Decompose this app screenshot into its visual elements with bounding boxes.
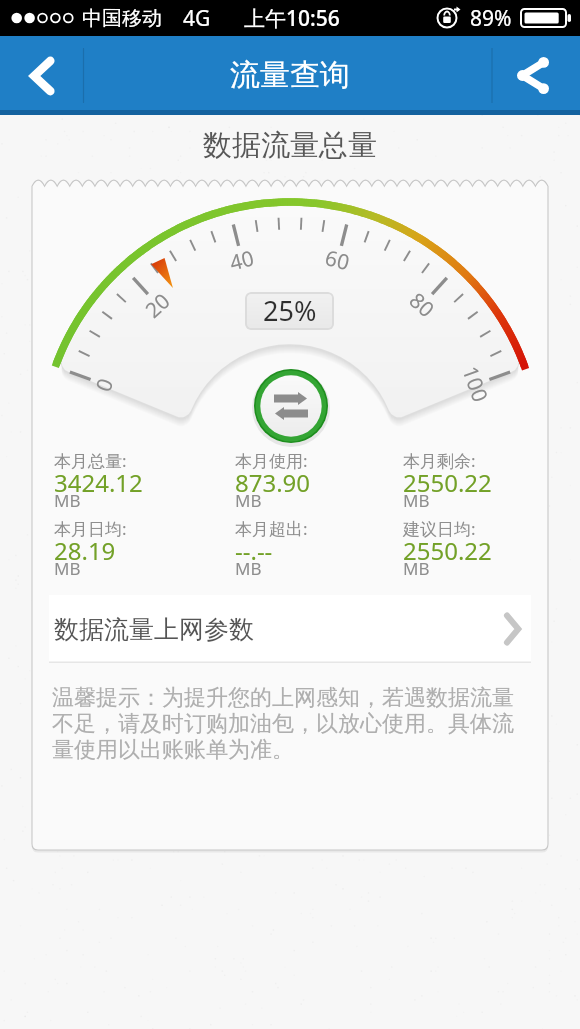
staticText: MB	[403, 557, 430, 580]
staticText: MB	[235, 489, 262, 512]
staticText: 25%	[263, 292, 317, 329]
staticText: 数据流量上网参数	[54, 614, 254, 645]
staticText: --.--	[235, 534, 273, 567]
staticText: 本月剩余:	[403, 449, 476, 472]
staticText: 3424.12	[54, 466, 143, 499]
staticText: 89%	[470, 4, 512, 33]
staticText: 4G	[183, 4, 211, 33]
button[interactable]: 数据流量上网参数	[49, 595, 531, 663]
staticText: 中国移动	[82, 6, 162, 31]
staticText: 数据流量总量	[0, 127, 580, 164]
staticText: 流量查询	[230, 56, 350, 94]
staticText: 本月使用:	[235, 449, 308, 472]
staticText: 2550.22	[403, 466, 492, 499]
staticText: 28.19	[54, 534, 116, 567]
button[interactable]: Switch units	[253, 368, 329, 444]
staticText: 温馨提示：为提升您的上网感知，若遇数据流量不足，请及时订购加油包，以放心使用。具…	[52, 684, 520, 764]
staticText: MB	[235, 557, 262, 580]
staticText: 本月超出:	[235, 517, 308, 540]
staticText: 上午10:56	[244, 4, 340, 33]
staticText: 建议日均:	[403, 517, 476, 540]
staticText: MB	[403, 489, 430, 512]
staticText: MB	[54, 489, 81, 512]
staticText: 2550.22	[403, 534, 492, 567]
staticText: 本月总量:	[54, 449, 127, 472]
button[interactable]: Back	[0, 36, 83, 115]
staticText: 873.90	[235, 466, 311, 499]
staticText: 本月日均:	[54, 517, 127, 540]
staticText: MB	[54, 557, 81, 580]
button[interactable]: Share	[486, 36, 580, 115]
